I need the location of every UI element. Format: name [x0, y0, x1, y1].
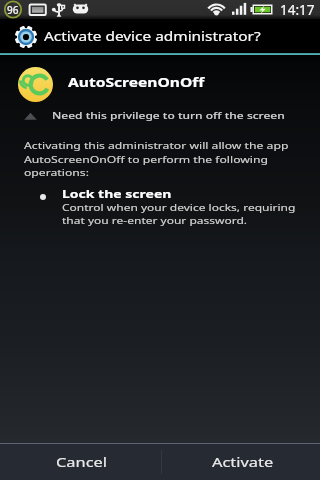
staticText: 96	[7, 3, 19, 17]
staticText: AutoScreenOnOff	[68, 74, 205, 90]
button[interactable]: Cancel	[0, 444, 160, 480]
staticText: Activating this administrator will allow…	[24, 139, 300, 179]
staticText: Cancel	[56, 453, 108, 471]
staticText: 14:17	[280, 1, 315, 19]
staticText: Activate device administrator?	[44, 29, 261, 45]
staticText: Lock the screen	[62, 187, 172, 201]
staticText: Control when your device locks, requirin…	[62, 201, 300, 227]
staticText: Activate	[212, 453, 274, 471]
staticText: Need this privilege to turn off the scre…	[52, 109, 285, 121]
button[interactable]: Activate	[160, 444, 320, 480]
